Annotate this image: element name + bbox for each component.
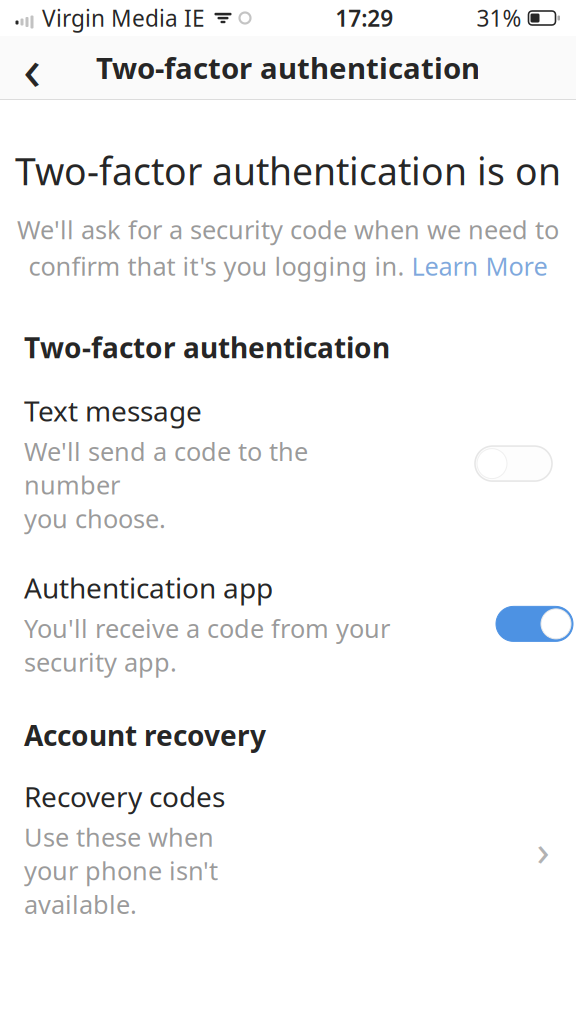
staticText: Two-factor authentication xyxy=(24,329,390,366)
button[interactable]: Authentication app xyxy=(0,569,576,679)
staticText: We'll send a code to the number you choo… xyxy=(24,434,308,535)
staticText: Two-factor authentication xyxy=(96,48,480,87)
staticText: confirm that it's you logging in. xyxy=(28,249,404,283)
staticText: You'll receive a code from your security… xyxy=(24,611,390,679)
staticText: We'll ask for a security code when we ne… xyxy=(17,213,559,246)
staticText: Two-factor authentication is on xyxy=(15,146,561,196)
staticText: Authentication app xyxy=(24,569,273,606)
staticText: Learn More xyxy=(404,249,547,283)
staticText: 31% xyxy=(476,3,521,33)
staticText: 17:29 xyxy=(335,3,393,33)
button[interactable]: Learn More xyxy=(404,249,547,283)
staticText: Virgin Media IE xyxy=(42,3,205,33)
button[interactable]: Recovery codes xyxy=(0,778,576,921)
button[interactable]: Text message xyxy=(0,392,576,535)
staticText: Recovery codes xyxy=(24,778,225,815)
staticText: Use these when your phone isn't availabl… xyxy=(24,820,218,921)
staticText: Text message xyxy=(24,392,202,429)
staticText: › xyxy=(536,821,549,878)
staticText: Account recovery xyxy=(24,717,266,754)
staticText: ‹ xyxy=(23,28,41,106)
button[interactable]: Back xyxy=(8,39,56,95)
